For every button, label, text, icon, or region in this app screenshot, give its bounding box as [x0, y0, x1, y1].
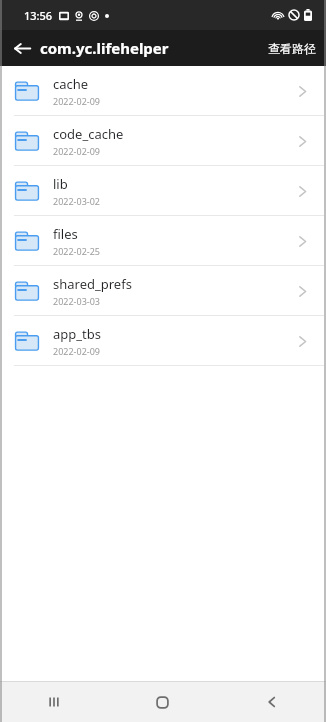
staticText: 2022-03-03: [53, 295, 100, 307]
button[interactable]: Back: [6, 32, 38, 64]
staticText: 查看路径: [268, 41, 316, 56]
staticText: 2022-02-09: [53, 95, 100, 107]
staticText: files: [53, 225, 78, 243]
staticText: app_tbs: [53, 325, 101, 343]
staticText: cache: [53, 75, 89, 93]
button[interactable]: lib: [0, 166, 326, 215]
staticText: 2022-02-25: [53, 245, 100, 257]
button[interactable]: app_tbs: [0, 316, 326, 365]
button[interactable]: Home: [108, 682, 217, 722]
staticText: shared_prefs: [53, 275, 132, 293]
button[interactable]: 查看路径: [258, 35, 326, 62]
button[interactable]: Back: [217, 682, 326, 722]
staticText: lib: [53, 175, 68, 193]
staticText: code_cache: [53, 125, 124, 143]
staticText: 2022-02-09: [53, 145, 100, 157]
button[interactable]: shared_prefs: [0, 266, 326, 315]
button[interactable]: code_cache: [0, 116, 326, 165]
button[interactable]: Recents: [0, 682, 108, 722]
button[interactable]: files: [0, 216, 326, 265]
staticText: com.yc.lifehelper: [40, 38, 258, 58]
staticText: 2022-02-09: [53, 345, 100, 357]
staticText: 13:56: [24, 8, 53, 23]
staticText: 2022-03-02: [53, 195, 100, 207]
button[interactable]: cache: [0, 66, 326, 115]
